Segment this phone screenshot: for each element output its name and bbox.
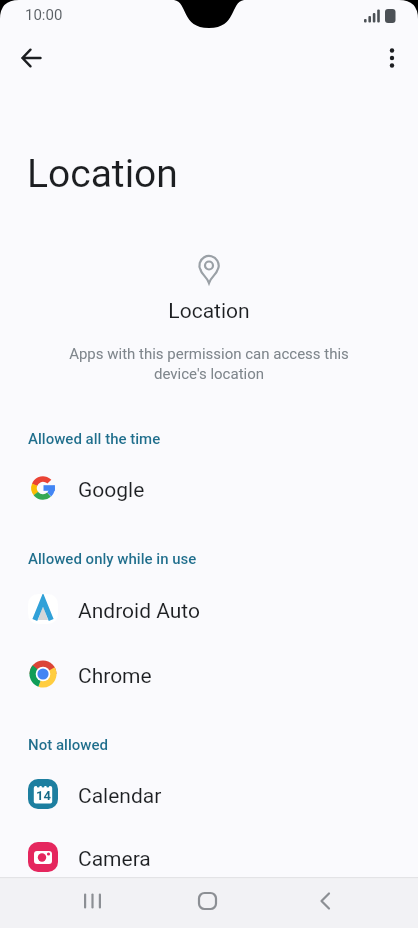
- staticText: Chrome: [78, 664, 152, 689]
- staticText: Location: [27, 151, 178, 197]
- button[interactable]: [372, 38, 412, 78]
- staticText: Not allowed: [28, 736, 108, 754]
- staticText: Android Auto: [78, 599, 200, 624]
- staticText: Google: [78, 478, 145, 503]
- staticText: Location: [0, 299, 418, 324]
- button[interactable]: 14: [0, 772, 418, 820]
- button[interactable]: [12, 38, 52, 78]
- button[interactable]: Chrome: [0, 652, 418, 700]
- staticText: Allowed only while in use: [28, 550, 197, 568]
- staticText: Calendar: [78, 784, 162, 809]
- button[interactable]: Android Auto: [0, 587, 418, 635]
- button[interactable]: [0, 877, 140, 928]
- button[interactable]: [279, 877, 418, 928]
- staticText: Camera: [78, 847, 151, 872]
- button[interactable]: Camera: [0, 835, 418, 883]
- staticText: Apps with this permission can access thi…: [0, 345, 418, 382]
- button[interactable]: Google: [0, 466, 418, 514]
- staticText: 10:00: [25, 6, 63, 24]
- staticText: 14: [36, 788, 51, 803]
- button[interactable]: [140, 877, 279, 928]
- staticText: Allowed all the time: [28, 430, 161, 448]
